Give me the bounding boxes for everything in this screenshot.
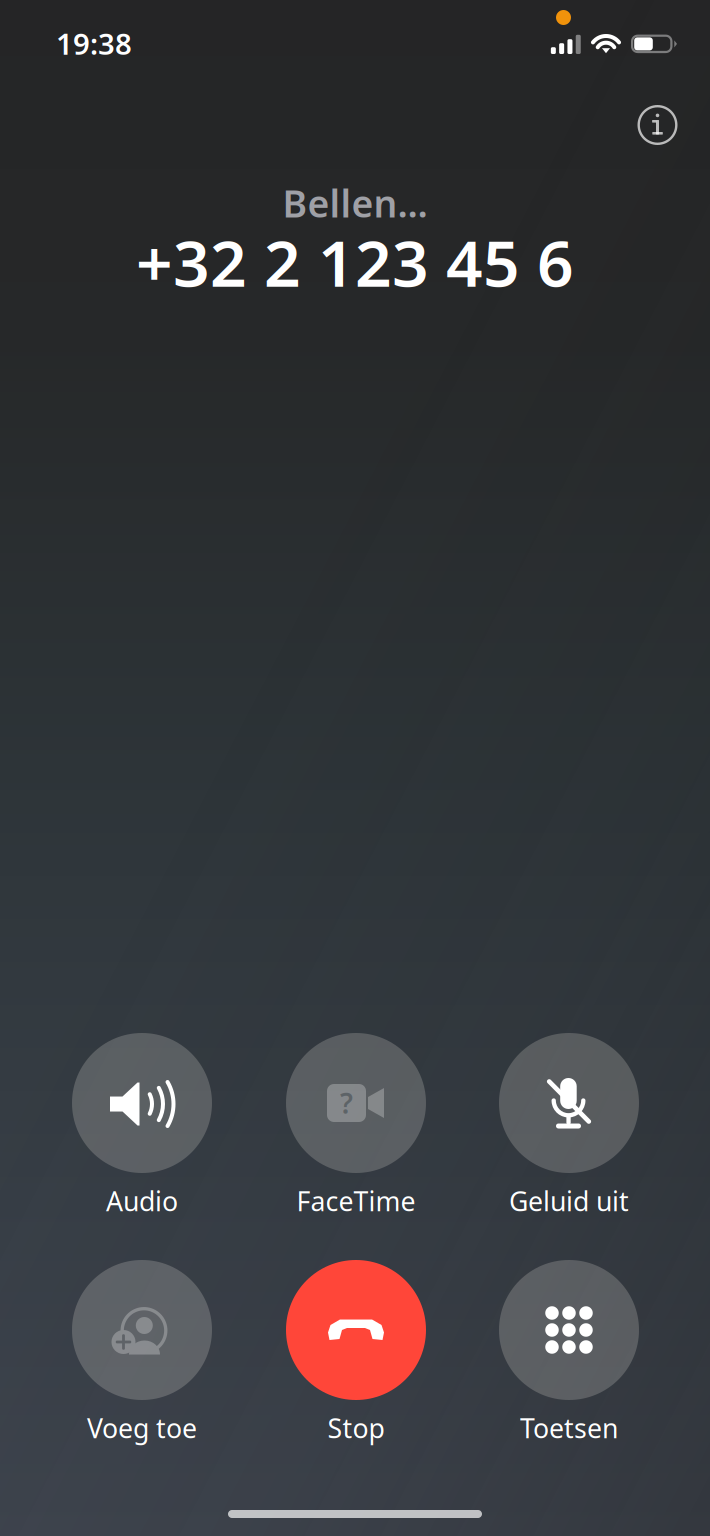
staticText: ? <box>340 1084 353 1122</box>
staticText: Stop <box>327 1410 384 1446</box>
button[interactable]: Voeg toe <box>46 1260 238 1444</box>
button[interactable]: Stop <box>260 1260 452 1444</box>
staticText: +32 2 123 45 6 <box>136 219 574 304</box>
button[interactable]: ? <box>260 1033 452 1217</box>
staticText: Toetsen <box>520 1410 618 1446</box>
staticText: FaceTime <box>296 1183 415 1219</box>
staticText: Audio <box>106 1183 178 1219</box>
button[interactable]: Call info <box>627 95 687 155</box>
button[interactable]: Audio <box>46 1033 238 1217</box>
button[interactable]: Toetsen <box>473 1260 665 1444</box>
staticText: Bellen... <box>282 178 427 228</box>
staticText: 19:38 <box>56 24 132 63</box>
button[interactable]: Geluid uit <box>473 1033 665 1217</box>
staticText: Voeg toe <box>87 1410 197 1446</box>
staticText: Geluid uit <box>509 1183 629 1219</box>
